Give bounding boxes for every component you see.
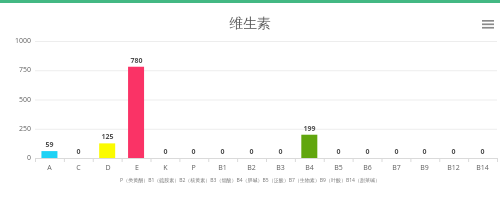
button[interactable]: B7 (382, 163, 411, 173)
staticText: 0 (278, 147, 283, 157)
button[interactable]: E (122, 163, 151, 173)
staticText: 0 (480, 147, 485, 157)
button[interactable]: P (179, 163, 208, 173)
staticText: P（类黄酮）B1（硫胺素）B2（核黄素）B3（烟酸）B4（胆碱）B5（泛酸）B7… (120, 177, 380, 184)
staticText: 500 (18, 95, 31, 105)
staticText: B14 (476, 163, 489, 173)
staticText: 0 (191, 147, 196, 157)
staticText: 250 (18, 124, 31, 134)
staticText: B9 (420, 163, 429, 173)
button[interactable]: B14 (468, 163, 497, 173)
staticText: 59 (45, 140, 54, 150)
button[interactable]: B2 (237, 163, 266, 173)
staticText: 0 (422, 147, 427, 157)
staticText: P (191, 163, 196, 173)
staticText: 0 (336, 147, 341, 157)
staticText: 780 (130, 56, 143, 66)
button[interactable]: B1 (208, 163, 237, 173)
staticText: B6 (363, 163, 372, 173)
staticText: 0 (163, 147, 168, 157)
staticText: B1 (218, 163, 227, 173)
staticText: E (135, 163, 139, 173)
staticText: B3 (276, 163, 285, 173)
button[interactable]: B5 (324, 163, 353, 173)
staticText: 0 (365, 147, 370, 157)
staticText: 125 (101, 132, 114, 142)
button[interactable]: B9 (410, 163, 439, 173)
staticText: 0 (249, 147, 254, 157)
staticText: B5 (334, 163, 343, 173)
staticText: 维生素 (229, 15, 271, 33)
button[interactable]: B3 (266, 163, 295, 173)
staticText: 0 (220, 147, 225, 157)
button[interactable]: Menu (478, 14, 498, 34)
staticText: B12 (447, 163, 460, 173)
button[interactable]: B4 (295, 163, 324, 173)
staticText: 199 (303, 124, 316, 134)
button[interactable]: D (93, 163, 122, 173)
button[interactable]: B6 (353, 163, 382, 173)
staticText: 1000 (14, 36, 31, 46)
staticText: B2 (247, 163, 256, 173)
staticText: B4 (305, 163, 314, 173)
button[interactable]: K (151, 163, 180, 173)
staticText: 0 (451, 147, 456, 157)
staticText: 0 (26, 153, 31, 163)
staticText: C (76, 163, 81, 173)
staticText: A (47, 163, 52, 173)
staticText: D (105, 163, 111, 173)
button[interactable]: A (35, 163, 64, 173)
staticText: 0 (394, 147, 399, 157)
button[interactable]: C (64, 163, 93, 173)
button[interactable]: B12 (439, 163, 468, 173)
staticText: B7 (392, 163, 401, 173)
staticText: 0 (76, 147, 81, 157)
staticText: 750 (18, 65, 31, 75)
staticText: K (163, 163, 168, 173)
